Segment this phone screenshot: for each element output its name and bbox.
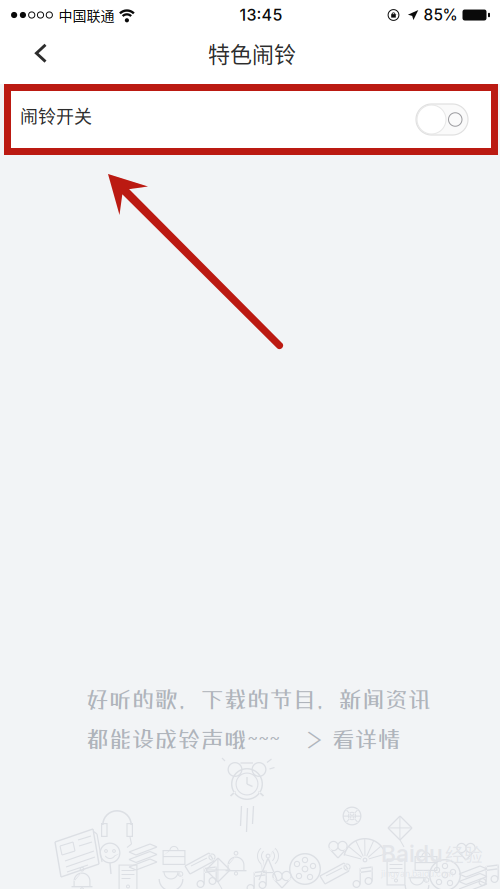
staticText: 都能设成铃声哦~~~ ＞ 看详情 bbox=[86, 726, 401, 752]
staticText: 中国联通 bbox=[58, 5, 114, 25]
staticText: 85% bbox=[423, 6, 457, 24]
button[interactable]: 返回 bbox=[14, 26, 68, 80]
staticText: 闹铃开关 bbox=[20, 102, 92, 129]
staticText: jingyan.baidu.com bbox=[381, 868, 454, 879]
staticText: 经验 bbox=[445, 840, 483, 867]
staticText: Baidu bbox=[381, 840, 443, 867]
staticText: 好听的歌，下载的节目，新闻资讯 bbox=[86, 686, 431, 713]
button[interactable]: 闹铃开关 bbox=[11, 91, 491, 148]
staticText: 特色闹铃 bbox=[208, 37, 296, 69]
staticText: 13:45 bbox=[239, 5, 282, 25]
